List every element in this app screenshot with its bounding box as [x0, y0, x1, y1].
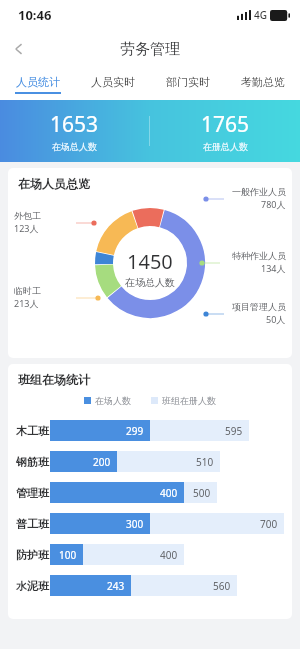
staticText: 50人 — [266, 313, 286, 325]
staticText: 临时工 — [14, 285, 41, 296]
button[interactable]: 人员实时 — [75, 68, 150, 100]
staticText: 外包工 — [14, 210, 41, 221]
staticText: 木工班 — [16, 424, 50, 438]
staticText: 班组在册人数 — [162, 395, 216, 406]
staticText: 普工班 — [16, 517, 50, 531]
button[interactable]: Back — [0, 30, 38, 68]
staticText: 在场总人数 — [125, 276, 175, 289]
button[interactable]: 水泥班 — [8, 570, 292, 601]
staticText: 部门实时 — [166, 75, 210, 89]
staticText: 1653 — [50, 110, 99, 139]
staticText: 510 — [196, 455, 214, 469]
staticText: 243 — [107, 579, 125, 593]
staticText: 134人 — [261, 262, 286, 274]
staticText: 10:46 — [18, 6, 52, 24]
staticText: 200 — [93, 455, 111, 469]
staticText: 班组在场统计 — [18, 372, 90, 387]
staticText: 特种作业人员 — [232, 250, 286, 261]
button[interactable]: 考勤总览 — [225, 68, 300, 100]
button[interactable]: 1653 — [0, 110, 149, 152]
staticText: 780人 — [261, 198, 286, 210]
staticText: 700 — [260, 517, 278, 531]
staticText: 213人 — [14, 297, 39, 309]
staticText: 人员统计 — [16, 75, 60, 89]
button[interactable]: 管理班 — [8, 477, 292, 508]
button[interactable]: 木工班 — [8, 415, 292, 446]
button[interactable]: 钢筋班 — [8, 446, 292, 477]
button[interactable]: 人员统计 — [0, 68, 75, 100]
staticText: 300 — [126, 517, 144, 531]
staticText: 595 — [225, 424, 243, 438]
staticText: 劳务管理 — [120, 40, 180, 59]
staticText: 防护班 — [16, 548, 50, 562]
staticText: 在场人数 — [95, 395, 131, 406]
staticText: 考勤总览 — [241, 75, 285, 89]
button[interactable]: 防护班 — [8, 539, 292, 570]
button[interactable]: 普工班 — [8, 508, 292, 539]
staticText: 钢筋班 — [16, 455, 50, 469]
staticText: 在册总人数 — [203, 141, 248, 152]
staticText: 1765 — [201, 110, 250, 139]
staticText: 100 — [59, 548, 77, 562]
staticText: 水泥班 — [16, 579, 50, 593]
staticText: 560 — [213, 579, 231, 593]
staticText: 299 — [126, 424, 144, 438]
button[interactable]: 部门实时 — [150, 68, 225, 100]
staticText: 在场人员总览 — [18, 176, 90, 191]
staticText: 项目管理人员 — [232, 301, 286, 312]
staticText: 4G — [254, 8, 267, 22]
staticText: 人员实时 — [91, 75, 135, 89]
staticText: 1450 — [127, 248, 173, 275]
staticText: 500 — [193, 486, 211, 500]
staticText: 400 — [160, 486, 178, 500]
staticText: 400 — [160, 548, 178, 562]
button[interactable]: 1765 — [150, 110, 300, 152]
staticText: 管理班 — [16, 486, 50, 500]
staticText: 123人 — [14, 222, 39, 234]
staticText: 在场总人数 — [52, 141, 97, 152]
staticText: 一般作业人员 — [232, 186, 286, 197]
